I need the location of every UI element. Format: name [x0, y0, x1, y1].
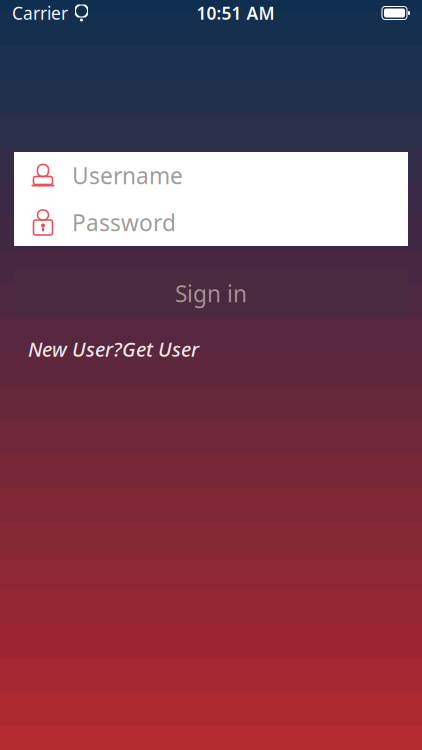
- button[interactable]: Password: [14, 199, 408, 246]
- staticText: Password: [72, 207, 176, 237]
- button[interactable]: Username: [14, 152, 408, 199]
- staticText: 10:51 AM: [196, 1, 274, 24]
- staticText: Sign in: [175, 278, 247, 308]
- staticText: Username: [72, 160, 183, 190]
- staticText: New User?Get User: [28, 336, 199, 362]
- staticText: Carrier: [12, 1, 68, 24]
- button[interactable]: Sign in: [14, 269, 408, 318]
- button[interactable]: New User?Get User: [14, 332, 408, 366]
